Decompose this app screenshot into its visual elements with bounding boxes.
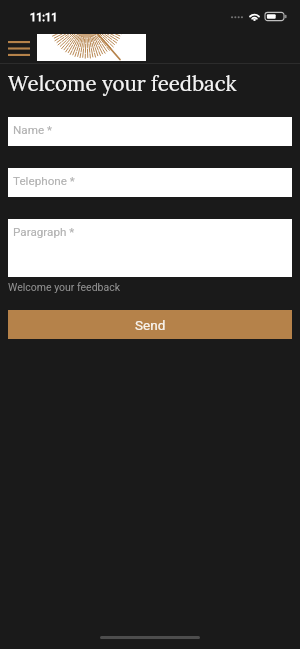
button[interactable]: Telephone * [8, 168, 292, 197]
button[interactable]: Paragraph * [8, 219, 292, 277]
staticText: Welcome your feedback [8, 281, 120, 293]
button[interactable]: Home [37, 34, 146, 61]
button[interactable]: Name * [8, 117, 292, 146]
staticText: Welcome your feedback [8, 70, 237, 96]
staticText: Paragraph * [13, 225, 75, 239]
staticText: Send [135, 317, 166, 333]
staticText: Name * [13, 123, 53, 137]
staticText: 11:11 [30, 11, 58, 24]
staticText: Telephone * [13, 174, 75, 188]
button[interactable]: Open navigation menu [2, 33, 35, 63]
button[interactable]: Send [8, 310, 292, 339]
